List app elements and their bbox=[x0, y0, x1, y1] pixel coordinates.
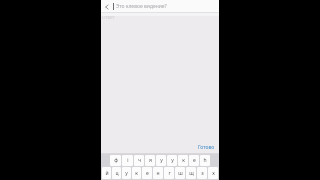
button[interactable]: ф bbox=[110, 155, 121, 166]
button[interactable]: щ bbox=[186, 167, 196, 179]
staticText: h bbox=[203, 157, 207, 164]
staticText: я bbox=[149, 157, 152, 164]
button[interactable]: Готово bbox=[197, 143, 216, 152]
button[interactable]: й bbox=[102, 167, 111, 179]
button[interactable]: х bbox=[208, 167, 218, 179]
staticText: ц bbox=[115, 170, 119, 177]
staticText: у bbox=[160, 157, 163, 164]
staticText: е bbox=[146, 170, 149, 177]
button[interactable]: я bbox=[145, 155, 155, 166]
button[interactable]: Это клевое видение? bbox=[113, 0, 215, 13]
staticText: щ bbox=[189, 170, 194, 177]
staticText: у bbox=[125, 170, 128, 177]
staticText: г bbox=[168, 170, 171, 177]
staticText: к bbox=[182, 157, 185, 164]
staticText: Это клевое видение? bbox=[116, 3, 167, 10]
button[interactable]: і bbox=[122, 155, 133, 166]
button[interactable]: у bbox=[167, 155, 177, 166]
staticText: у bbox=[171, 157, 174, 164]
staticText: к bbox=[135, 170, 138, 177]
button[interactable]: з bbox=[197, 167, 207, 179]
staticText: і bbox=[127, 157, 129, 164]
staticText: й bbox=[105, 170, 109, 177]
staticText: е bbox=[193, 157, 196, 164]
button[interactable]: н bbox=[153, 167, 163, 179]
button[interactable]: е bbox=[189, 155, 199, 166]
button[interactable]: е bbox=[142, 167, 152, 179]
staticText: Готово bbox=[198, 144, 215, 151]
button[interactable]: у bbox=[156, 155, 166, 166]
button[interactable]: к bbox=[178, 155, 188, 166]
button[interactable]: ч bbox=[134, 155, 144, 166]
button[interactable]: ц bbox=[112, 167, 121, 179]
button[interactable]: г bbox=[164, 167, 174, 179]
staticText: н bbox=[156, 170, 160, 177]
staticText: ш bbox=[178, 170, 183, 177]
staticText: х bbox=[212, 170, 215, 177]
button[interactable]: ш bbox=[175, 167, 185, 179]
button[interactable]: у bbox=[122, 167, 131, 179]
staticText: ф bbox=[114, 157, 118, 164]
button[interactable]: Back bbox=[101, 0, 113, 13]
staticText: з bbox=[201, 170, 204, 177]
staticText: ч bbox=[138, 157, 141, 164]
staticText: Ответ bbox=[102, 14, 115, 20]
button[interactable]: к bbox=[132, 167, 141, 179]
button[interactable]: h bbox=[200, 155, 210, 166]
